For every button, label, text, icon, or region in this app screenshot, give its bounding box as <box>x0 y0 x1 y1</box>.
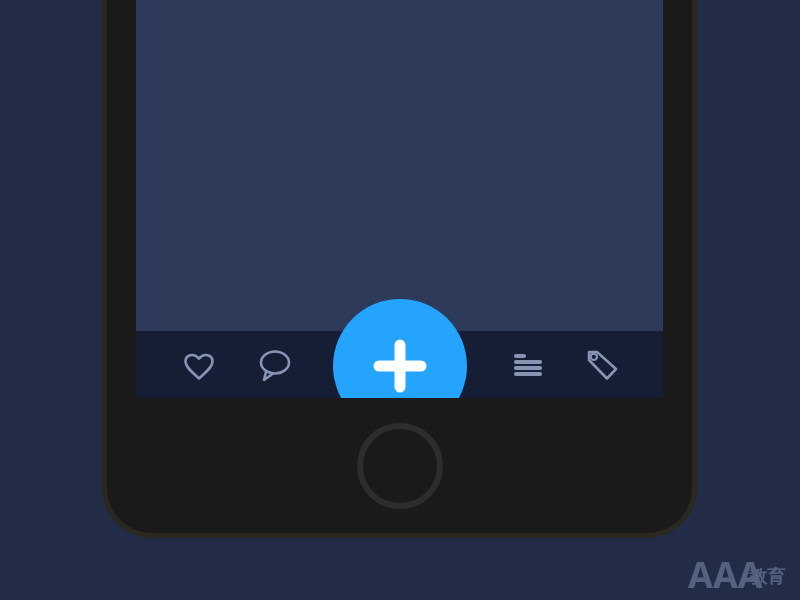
button[interactable]: Likes <box>172 331 226 398</box>
staticText: AAA <box>688 550 763 599</box>
button[interactable]: Add new post <box>333 299 467 398</box>
button[interactable]: Feed <box>502 331 556 398</box>
button[interactable]: Home <box>358 424 442 508</box>
button[interactable]: Tags <box>576 331 630 398</box>
staticText: 教育 <box>749 566 785 589</box>
button[interactable]: Comments <box>248 331 302 398</box>
